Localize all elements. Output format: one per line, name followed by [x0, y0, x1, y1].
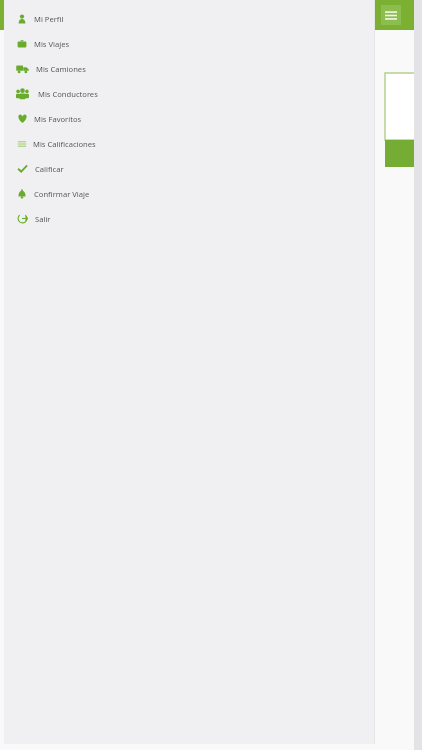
button[interactable]: Mis Viajes: [4, 31, 375, 56]
button[interactable]: Mis Camiones: [4, 56, 375, 81]
staticText: Mis Favoritos: [34, 114, 82, 124]
staticText: Mis Camiones: [36, 64, 86, 74]
button[interactable]: Calificar: [4, 156, 375, 181]
staticText: Mi Perfil: [34, 14, 64, 24]
staticText: Mis Calificaciones: [33, 139, 96, 149]
button[interactable]: Mis Favoritos: [4, 106, 375, 131]
staticText: Mis Conductores: [38, 89, 98, 99]
staticText: Calificar: [35, 164, 64, 174]
staticText: Confirmar Viaje: [34, 189, 90, 199]
staticText: Salir: [35, 214, 51, 224]
button[interactable]: Confirmar Viaje: [4, 181, 375, 206]
button[interactable]: Mis Conductores: [4, 81, 375, 106]
staticText: Mis Viajes: [34, 39, 70, 49]
button[interactable]: Abrir menú: [381, 5, 401, 25]
button[interactable]: Salir: [4, 206, 375, 231]
button[interactable]: Mis Calificaciones: [4, 131, 375, 156]
button[interactable]: Más opciones: [385, 140, 422, 167]
button[interactable]: Mi Perfil: [4, 6, 375, 31]
